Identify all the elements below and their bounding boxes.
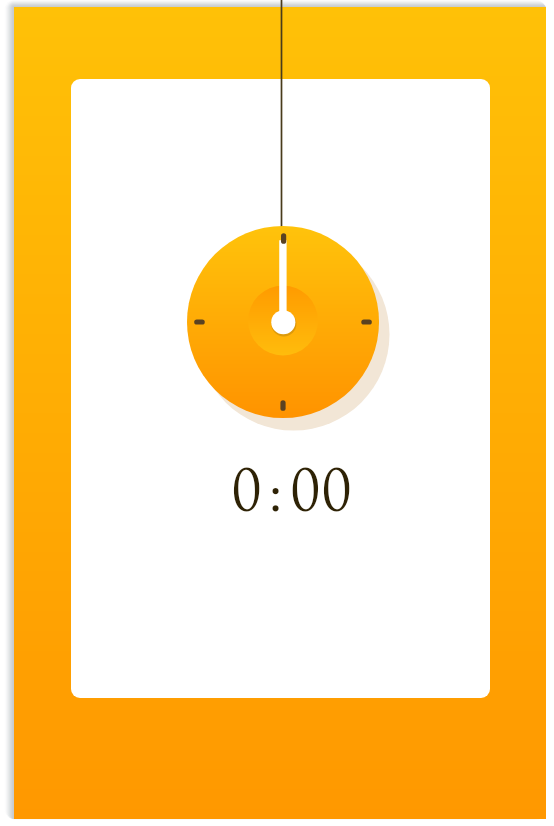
- staticText: 00: [263, 458, 379, 538]
- staticText: 0: [216, 458, 280, 538]
- button[interactable]: 0: [195, 458, 385, 538]
- button[interactable]: Clock face showing zero minutes: [185, 224, 393, 434]
- staticText: :: [259, 458, 295, 538]
- button[interactable]: [71, 79, 490, 698]
